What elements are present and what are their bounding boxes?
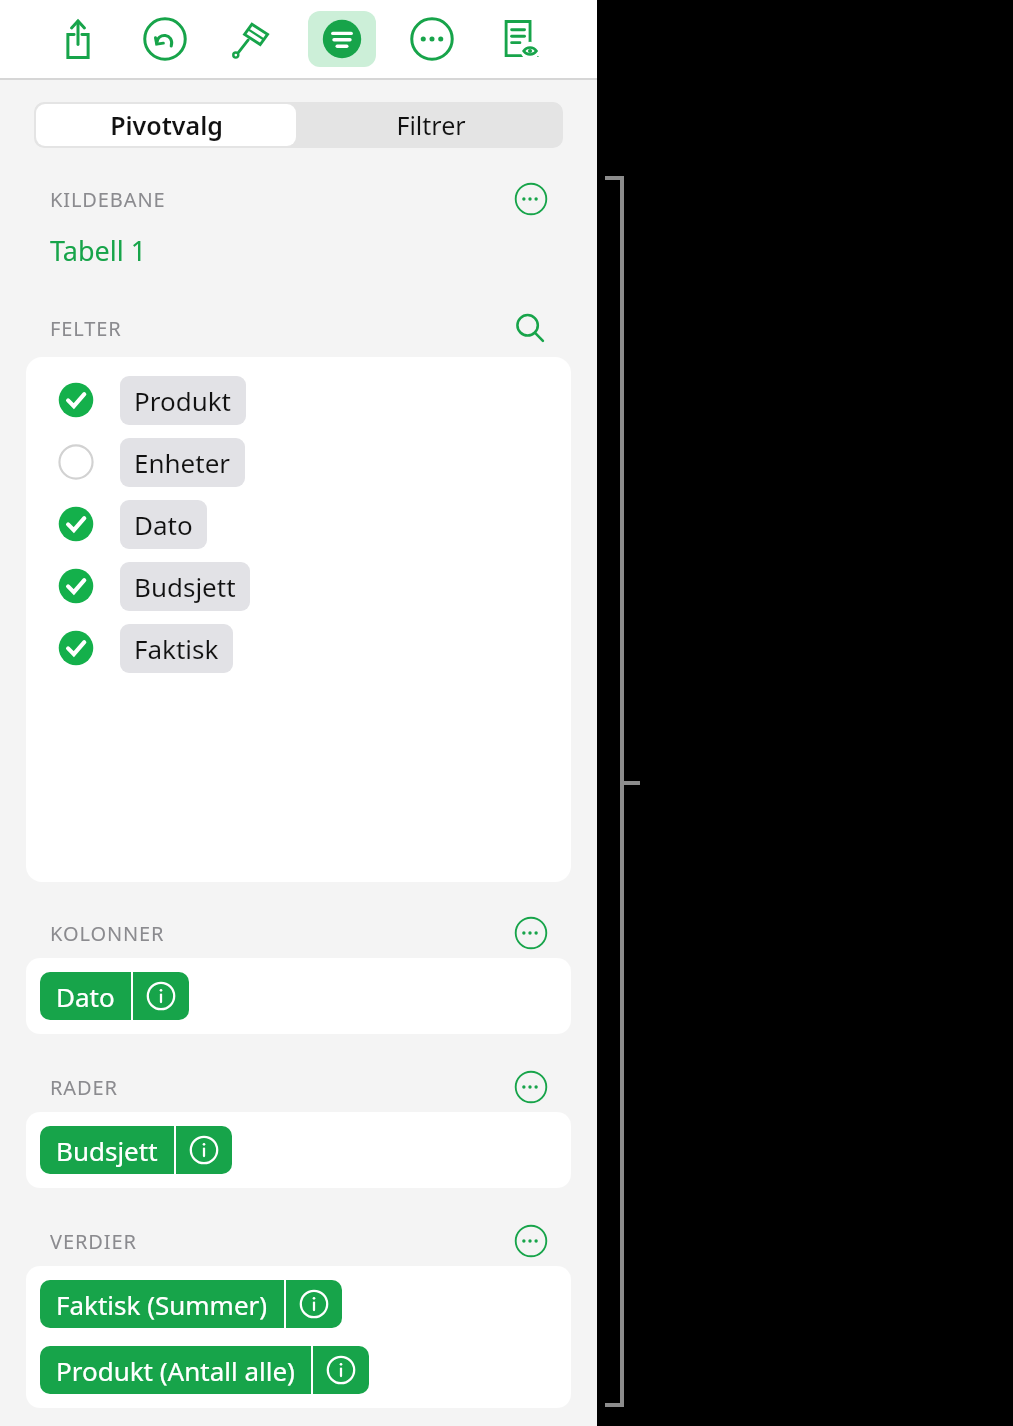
button[interactable]: Enheter bbox=[26, 431, 571, 493]
button[interactable]: Filtrer bbox=[298, 102, 563, 148]
staticText: Produkt (Antall alle) bbox=[56, 1353, 295, 1388]
staticText: RADER bbox=[50, 1074, 118, 1101]
button[interactable]: KILDEBANE options bbox=[509, 182, 553, 216]
button[interactable]: Produkt (Antall alle) bbox=[40, 1346, 369, 1394]
button[interactable]: More bbox=[402, 11, 462, 67]
staticText: KOLONNER bbox=[50, 920, 165, 947]
staticText: Filtrer bbox=[396, 108, 466, 142]
button[interactable]: Dato bbox=[26, 493, 571, 555]
button[interactable]: Undo bbox=[135, 11, 195, 67]
button[interactable]: Format brush bbox=[221, 11, 281, 67]
button[interactable]: Info about Faktisk (Summer) bbox=[286, 1280, 342, 1328]
button[interactable]: Budsjett bbox=[40, 1126, 232, 1174]
button[interactable]: Pivotvalg bbox=[36, 104, 296, 146]
button[interactable]: VERDIER options bbox=[509, 1224, 553, 1258]
button[interactable]: Share bbox=[48, 11, 108, 67]
staticText: VERDIER bbox=[50, 1228, 137, 1255]
staticText: Pivotvalg bbox=[110, 108, 223, 142]
staticText: KILDEBANE bbox=[50, 186, 166, 213]
button[interactable]: Organize bbox=[308, 11, 376, 67]
staticText: FELTER bbox=[50, 315, 122, 342]
button[interactable]: RADER options bbox=[509, 1070, 553, 1104]
staticText: Faktisk bbox=[134, 631, 219, 666]
button[interactable]: Info about Dato bbox=[133, 972, 189, 1020]
staticText: Budsjett bbox=[56, 1133, 158, 1168]
button[interactable]: Produkt bbox=[26, 369, 571, 431]
button[interactable]: Info about Produkt (Antall alle) bbox=[313, 1346, 369, 1394]
staticText: Faktisk (Summer) bbox=[56, 1287, 268, 1322]
button[interactable]: Budsjett bbox=[26, 555, 571, 617]
staticText: Produkt bbox=[134, 383, 232, 418]
button[interactable]: Faktisk bbox=[26, 617, 571, 679]
button[interactable]: Dato bbox=[40, 972, 189, 1020]
button[interactable]: KOLONNER options bbox=[509, 916, 553, 950]
button[interactable]: Info about Budsjett bbox=[176, 1126, 232, 1174]
button[interactable]: FELTER options bbox=[509, 311, 553, 345]
button[interactable]: Document options bbox=[489, 11, 549, 67]
staticText: Dato bbox=[56, 979, 115, 1014]
staticText: Enheter bbox=[134, 445, 231, 480]
staticText: Budsjett bbox=[134, 569, 236, 604]
staticText: Dato bbox=[134, 507, 193, 542]
button[interactable]: Tabell 1 bbox=[50, 232, 147, 269]
button[interactable]: Faktisk (Summer) bbox=[40, 1280, 342, 1328]
